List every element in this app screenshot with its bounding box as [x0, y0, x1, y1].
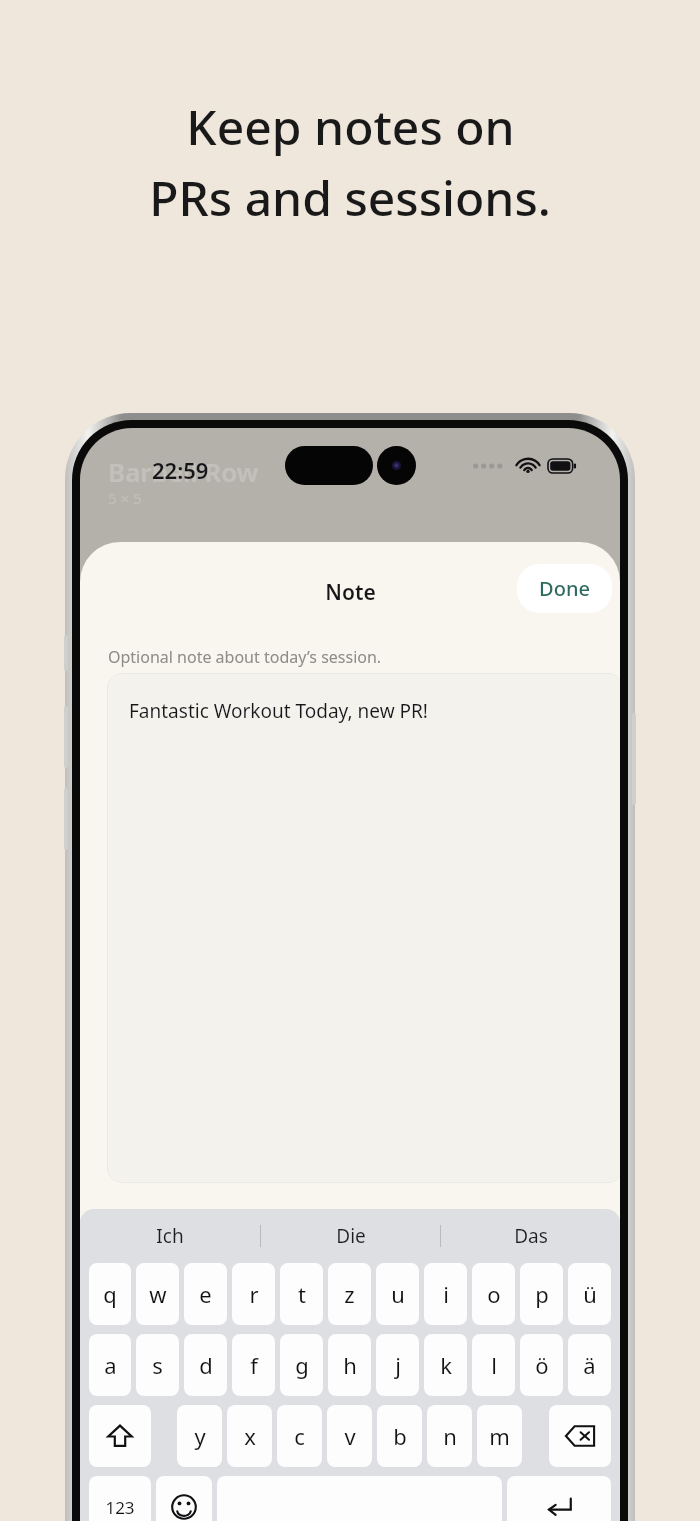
staticText: c	[294, 1421, 305, 1451]
button[interactable]: a	[89, 1334, 131, 1396]
button[interactable]: ö	[520, 1334, 563, 1396]
staticText: z	[344, 1279, 355, 1309]
staticText: b	[393, 1421, 407, 1451]
staticText: Ich	[156, 1223, 184, 1249]
button[interactable]: r	[232, 1263, 275, 1325]
staticText: Fantastic Workout Today, new PR!	[129, 698, 428, 724]
staticText: e	[199, 1279, 212, 1309]
staticText: l	[491, 1350, 497, 1380]
staticText: k	[440, 1350, 452, 1380]
staticText: ö	[535, 1350, 549, 1380]
staticText: m	[489, 1421, 510, 1451]
button[interactable]: n	[427, 1405, 472, 1467]
staticText: x	[244, 1421, 256, 1451]
button[interactable]: ü	[568, 1263, 611, 1325]
staticText: PRs and sessions.	[149, 165, 551, 230]
button[interactable]: o	[472, 1263, 515, 1325]
button[interactable]: l	[472, 1334, 515, 1396]
button[interactable]: g	[280, 1334, 323, 1396]
staticText: i	[443, 1279, 449, 1309]
button[interactable]: w	[136, 1263, 179, 1325]
button[interactable]: Done	[517, 564, 612, 613]
staticText: n	[443, 1421, 457, 1451]
button[interactable]: e	[184, 1263, 227, 1325]
staticText: o	[487, 1279, 501, 1309]
button[interactable]: Backspace	[549, 1405, 611, 1467]
staticText: Die	[336, 1223, 366, 1249]
button[interactable]: Das	[441, 1209, 620, 1263]
staticText: q	[103, 1279, 117, 1309]
button[interactable]: Ich	[80, 1209, 260, 1263]
button[interactable]: Die	[261, 1209, 440, 1263]
button[interactable]: z	[328, 1263, 371, 1325]
staticText: p	[535, 1279, 549, 1309]
button[interactable]: y	[177, 1405, 222, 1467]
button[interactable]: i	[424, 1263, 467, 1325]
button[interactable]: f	[232, 1334, 275, 1396]
staticText: Barbell Row	[108, 454, 259, 489]
button[interactable]: x	[227, 1405, 272, 1467]
button[interactable]: s	[136, 1334, 179, 1396]
staticText: w	[149, 1279, 167, 1309]
staticText: s	[152, 1350, 163, 1380]
button[interactable]: u	[376, 1263, 419, 1325]
button[interactable]: 123	[89, 1476, 151, 1521]
staticText: Done	[539, 575, 590, 602]
staticText: h	[343, 1350, 357, 1380]
staticText: Keep notes on	[186, 94, 515, 159]
staticText: Note	[325, 578, 376, 607]
staticText: t	[298, 1279, 306, 1309]
button[interactable]: b	[377, 1405, 422, 1467]
button[interactable]: m	[477, 1405, 522, 1467]
staticText: f	[250, 1350, 258, 1380]
button[interactable]: Emoji	[156, 1476, 212, 1521]
button[interactable]: q	[89, 1263, 131, 1325]
staticText: d	[199, 1350, 213, 1380]
staticText: 5 × 5	[108, 488, 142, 508]
staticText: g	[295, 1350, 309, 1380]
staticText: 22:59	[152, 455, 209, 485]
staticText: ü	[583, 1279, 597, 1309]
button[interactable]: Fantastic Workout Today, new PR!	[107, 673, 620, 1183]
button[interactable]: p	[520, 1263, 563, 1325]
staticText: v	[344, 1421, 356, 1451]
staticText: a	[104, 1350, 117, 1380]
staticText: Das	[514, 1223, 548, 1249]
button[interactable]: Shift	[89, 1405, 151, 1467]
button[interactable]: h	[328, 1334, 371, 1396]
button[interactable]: k	[424, 1334, 467, 1396]
staticText: u	[391, 1279, 405, 1309]
staticText: 123	[105, 1496, 135, 1519]
button[interactable]: c	[277, 1405, 322, 1467]
staticText: j	[395, 1350, 401, 1380]
button[interactable]: j	[376, 1334, 419, 1396]
staticText: ä	[583, 1350, 596, 1380]
button[interactable]: t	[280, 1263, 323, 1325]
button[interactable]: v	[327, 1405, 372, 1467]
staticText: Optional note about today’s session.	[108, 646, 382, 668]
button[interactable]: d	[184, 1334, 227, 1396]
staticText: r	[249, 1279, 259, 1309]
button[interactable]: ä	[568, 1334, 611, 1396]
button[interactable]: Return	[507, 1476, 611, 1521]
staticText: y	[194, 1421, 206, 1451]
